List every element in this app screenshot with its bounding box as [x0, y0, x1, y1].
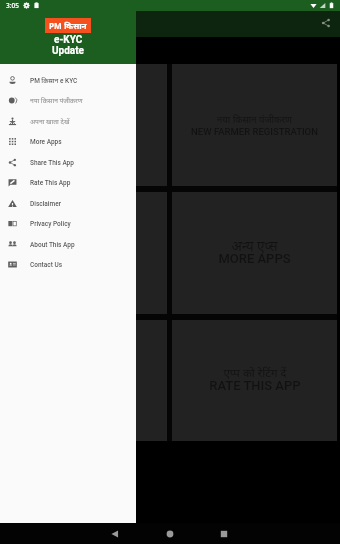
button[interactable]: PM किसान e KYC — [0, 70, 136, 91]
staticText: Share This App — [30, 159, 74, 167]
button[interactable] — [3, 192, 167, 314]
staticText: नया किसान पंजीकरण — [217, 113, 292, 126]
button[interactable]: More Apps — [0, 131, 136, 152]
staticText: RATE THIS APP — [209, 378, 301, 393]
button[interactable]: नया किसान पंजीकरण — [0, 90, 136, 111]
staticText: अन्य एप्स — [231, 237, 278, 255]
button[interactable]: Rate This App — [0, 172, 136, 193]
button[interactable]: Contact Us — [0, 254, 136, 275]
staticText: Rate This App — [30, 179, 71, 187]
staticText: More Apps — [30, 138, 62, 146]
button[interactable]: Back — [105, 524, 125, 544]
staticText: Privacy Policy — [30, 220, 71, 228]
staticText: Disclaimer — [30, 200, 61, 208]
staticText: NEW FARMER REGISTRATION — [191, 126, 318, 137]
button[interactable]: अपना खाता देखें — [0, 111, 136, 132]
button[interactable] — [3, 320, 167, 441]
staticText: About This App — [30, 241, 75, 249]
staticText: PM किसान e KYC — [30, 76, 78, 85]
button[interactable]: About This App — [0, 234, 136, 255]
button[interactable]: Recents — [214, 524, 234, 544]
staticText: Contact Us — [30, 261, 63, 269]
button[interactable] — [3, 64, 167, 186]
staticText: 3:05 — [6, 1, 19, 10]
button[interactable]: Share This App — [0, 152, 136, 173]
staticText: अपना खाता देखें — [30, 117, 70, 126]
button[interactable]: Home — [160, 524, 180, 544]
button[interactable]: Disclaimer — [0, 193, 136, 214]
button[interactable]: Share — [317, 14, 335, 32]
staticText: नया किसान पंजीकरण — [30, 96, 83, 105]
staticText: MORE APPS — [218, 251, 291, 266]
staticText: e-KYC — [54, 34, 83, 46]
staticText: PM किसान — [49, 20, 87, 31]
staticText: Update — [52, 45, 84, 57]
button[interactable]: Privacy Policy — [0, 213, 136, 234]
staticText: एप्प को रेटिंग दें — [223, 365, 287, 381]
